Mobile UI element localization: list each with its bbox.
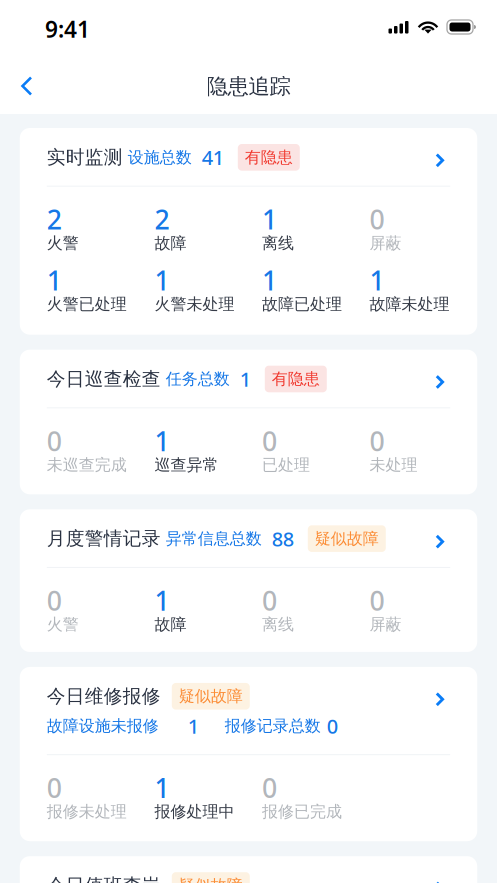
staticText: 有隐患 [272,369,320,389]
staticText: 故障已处理 [262,294,342,314]
staticText: 1 [47,262,62,298]
staticText: 实时监测 [47,146,123,169]
staticText: 1 [188,713,199,739]
staticText: 1 [262,201,277,237]
staticText: 故障 [154,615,186,634]
staticText: 隐患追踪 [206,73,290,100]
staticText: 1 [154,262,169,298]
staticText: 设施总数 [123,147,202,167]
staticText: 离线 [262,615,294,634]
staticText: 0 [262,770,277,805]
staticText: 异常信息总数 [161,529,272,548]
button[interactable]: 实时监测 [20,128,477,186]
staticText: 41 [202,144,224,171]
staticText: 报修已完成 [262,802,342,821]
staticText: 屏蔽 [370,233,402,253]
staticText: 1 [154,770,169,805]
staticText: 疑似故障 [179,876,243,883]
staticText: 今日巡查检查 [47,367,161,390]
staticText: 未巡查完成 [47,455,127,475]
staticText: 0 [47,423,62,458]
staticText: 0 [370,583,385,618]
button[interactable]: Back [0,64,49,104]
staticText: 今日维修报修 [47,685,161,708]
staticText: 未处理 [370,455,418,475]
staticText: 疑似故障 [179,686,243,706]
staticText: 今日值班查岗 [47,874,161,883]
staticText: 火警 [47,233,79,253]
staticText: 有隐患 [245,147,293,167]
staticText: 故障设施未报修 [47,716,159,736]
staticText: 1 [154,583,169,618]
staticText: 1 [240,366,251,392]
staticText: 火警已处理 [47,294,127,314]
staticText: 2 [47,201,62,237]
staticText: 0 [327,713,338,739]
staticText: 0 [370,201,385,237]
staticText: 1 [154,423,169,458]
button[interactable]: 今日巡查检查 [20,350,477,407]
staticText: 报修处理中 [154,802,234,821]
staticText: 月度警情记录 [47,527,161,550]
staticText: 0 [262,423,277,458]
button[interactable]: 今日维修报修 [20,667,477,754]
staticText: 疑似故障 [315,529,379,548]
button[interactable]: 月度警情记录 [20,509,477,567]
staticText: 0 [47,583,62,618]
staticText: 故障未处理 [370,294,450,314]
staticText: 88 [272,525,294,552]
staticText: 2 [154,201,169,237]
staticText: 火警未处理 [154,294,234,314]
staticText: 屏蔽 [370,615,402,634]
staticText: 0 [370,423,385,458]
staticText: 1 [370,262,385,298]
staticText: 报修未处理 [47,802,127,821]
staticText: 火警 [47,615,79,634]
button[interactable]: 今日值班查岗 [20,856,477,883]
staticText: 9:41 [45,14,90,44]
staticText: 1 [262,262,277,298]
staticText: 报修记录总数 [225,716,321,736]
staticText: 任务总数 [161,369,240,389]
staticText: 0 [47,770,62,805]
staticText: 故障 [154,233,186,253]
staticText: 离线 [262,233,294,253]
staticText: 0 [262,583,277,618]
staticText: 巡查异常 [154,455,218,475]
staticText: 已处理 [262,455,310,475]
